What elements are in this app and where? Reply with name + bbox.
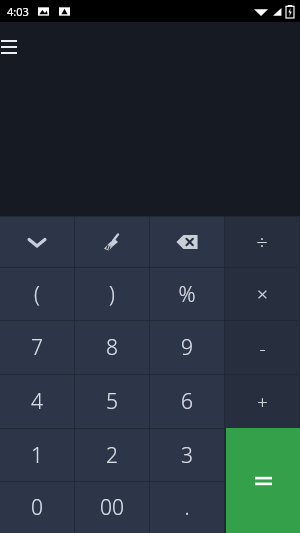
staticText: × (257, 281, 268, 307)
staticText: ) (109, 280, 115, 309)
button[interactable]: 7 (0, 321, 74, 374)
button[interactable]: Collapse (0, 217, 74, 267)
button[interactable]: × (225, 268, 299, 320)
button[interactable]: 8 (75, 321, 149, 374)
staticText: - (259, 335, 266, 361)
button[interactable]: - (225, 321, 299, 374)
staticText: 4 (31, 387, 43, 416)
button[interactable]: Backspace (150, 217, 224, 267)
staticText: 00 (100, 493, 124, 522)
staticText: 9 (181, 333, 193, 362)
button[interactable]: ( (0, 268, 74, 320)
staticText: 4:03 (7, 4, 29, 19)
staticText: ( (34, 280, 40, 309)
button[interactable] (226, 428, 300, 533)
staticText: 6 (181, 387, 193, 416)
button[interactable]: 6 (150, 375, 224, 428)
staticText: 7 (31, 333, 43, 362)
staticText: ÷ (256, 229, 268, 256)
button[interactable]: 4 (0, 375, 74, 428)
staticText: 5 (106, 387, 118, 416)
button[interactable]: 9 (150, 321, 224, 374)
button[interactable]: ) (75, 268, 149, 320)
button[interactable]: Clear all (75, 217, 149, 267)
staticText: 2 (106, 441, 118, 470)
staticText: + (257, 389, 268, 415)
staticText: % (178, 280, 196, 309)
staticText: 0 (31, 493, 43, 522)
staticText: 8 (106, 333, 118, 362)
button[interactable]: ÷ (225, 217, 299, 267)
button[interactable]: 3 (150, 429, 224, 481)
button[interactable]: % (150, 268, 224, 320)
button[interactable]: + (225, 375, 299, 428)
staticText: 3 (181, 441, 193, 470)
button[interactable]: 1 (0, 429, 74, 481)
staticText: 1 (31, 441, 43, 470)
button[interactable]: 0 (0, 482, 74, 533)
button[interactable]: 00 (75, 482, 149, 533)
button[interactable]: Menu (0, 32, 24, 62)
button[interactable]: 2 (75, 429, 149, 481)
button[interactable]: 5 (75, 375, 149, 428)
staticText: . (184, 493, 190, 522)
button[interactable]: . (150, 482, 224, 533)
